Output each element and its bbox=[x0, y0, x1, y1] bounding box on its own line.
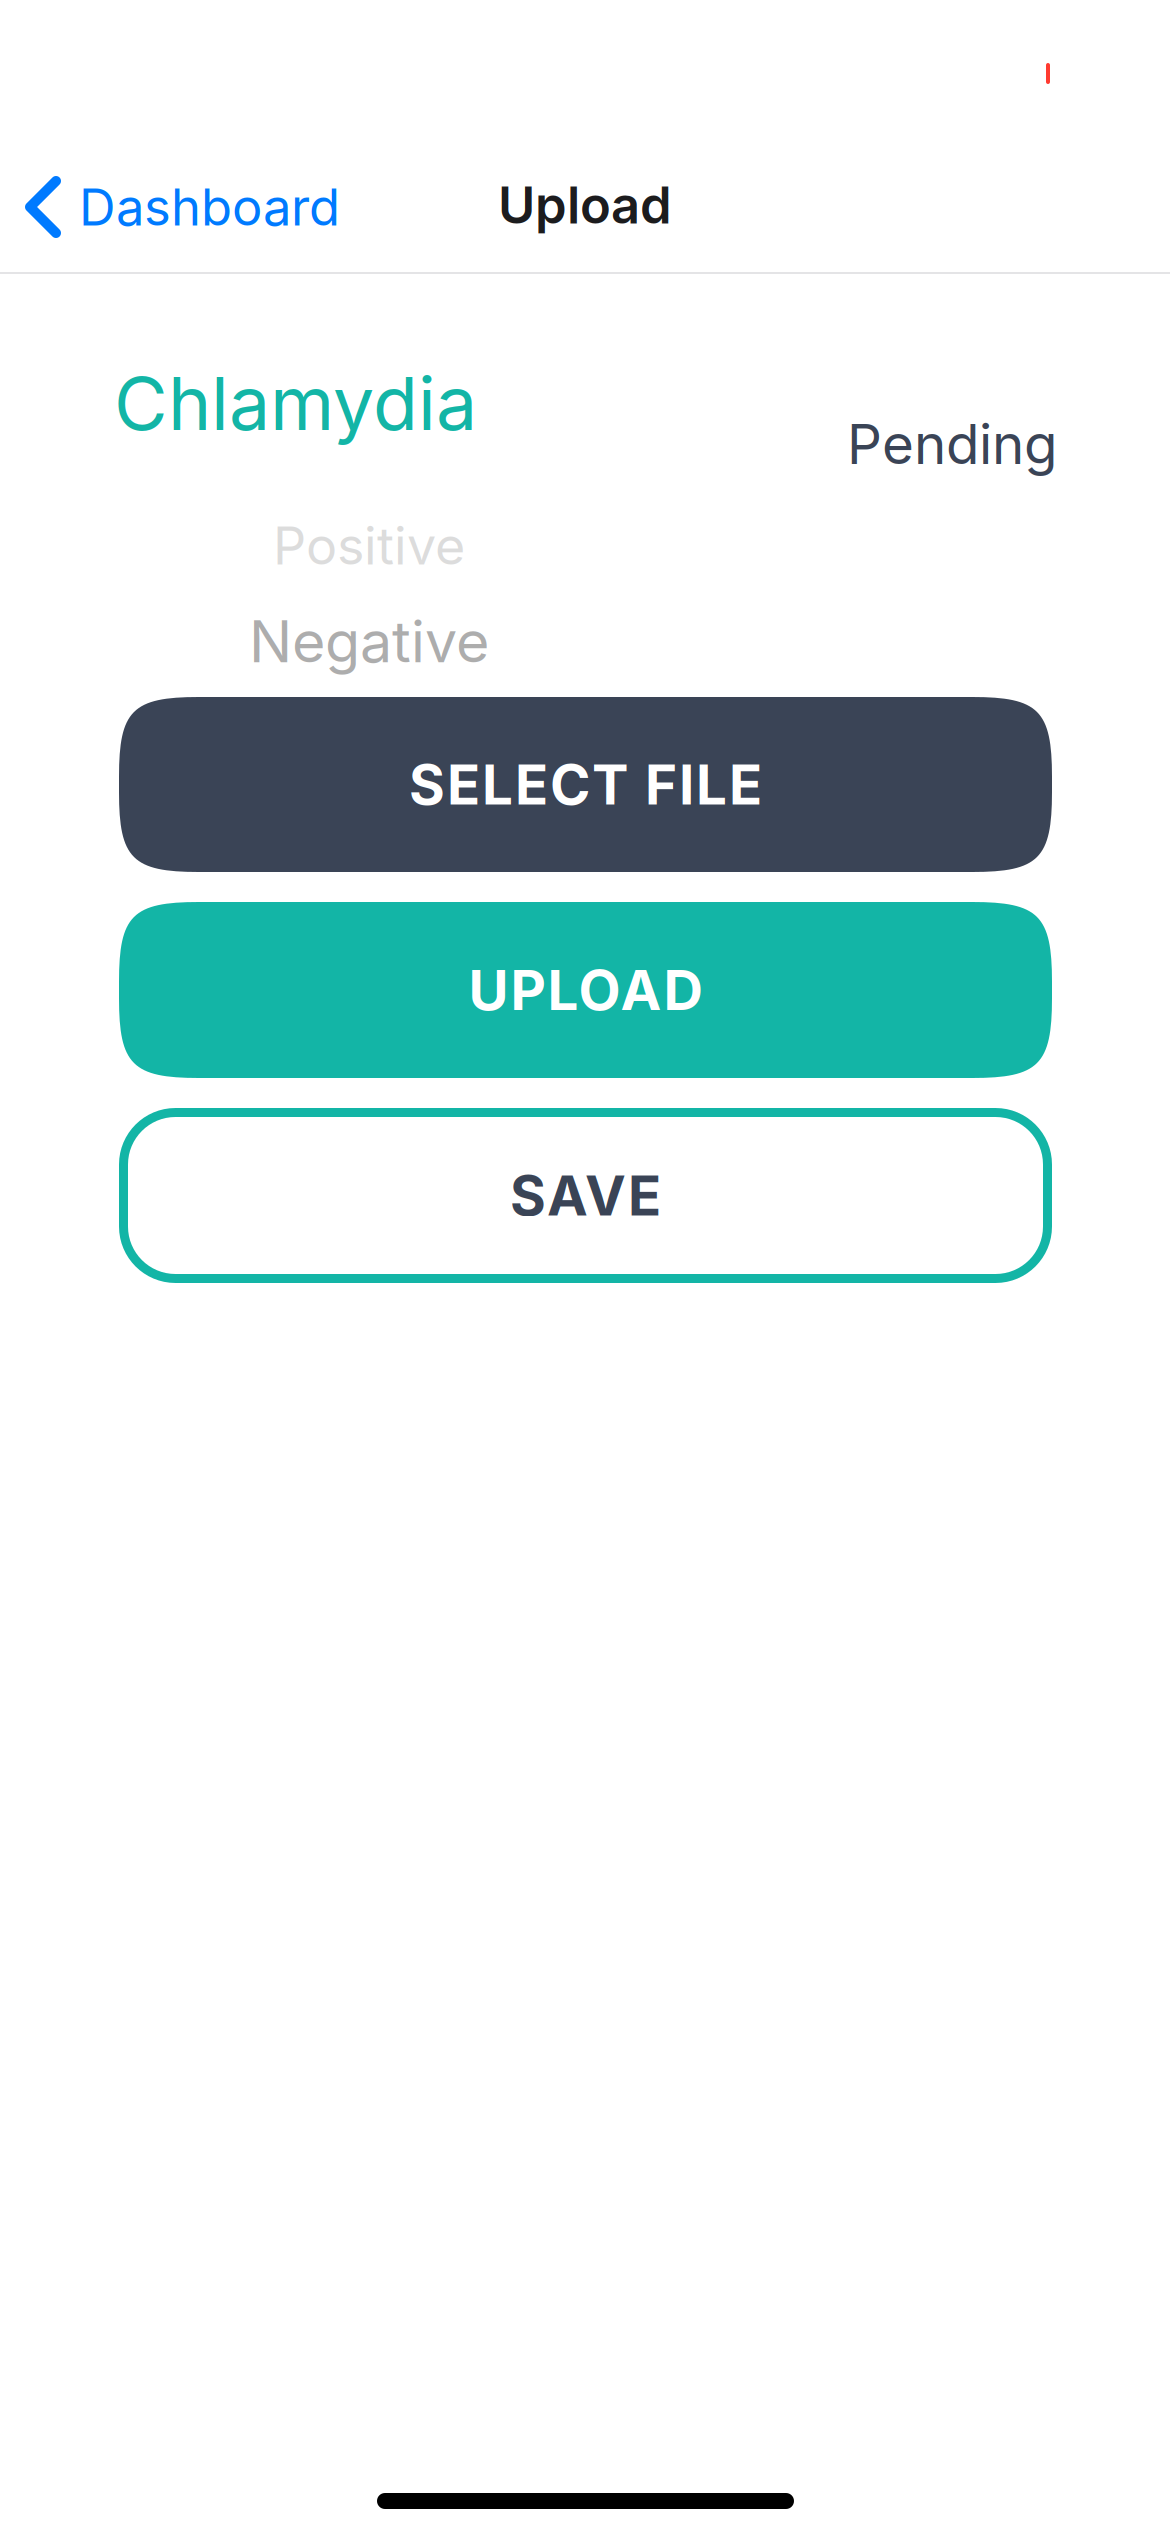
staticText: SELECT FILE bbox=[409, 751, 762, 817]
button[interactable]: Positive bbox=[119, 520, 619, 571]
button[interactable]: SAVE bbox=[119, 1108, 1052, 1283]
staticText: Pending bbox=[847, 411, 1058, 477]
staticText: Upload bbox=[498, 174, 672, 236]
staticText: UPLOAD bbox=[468, 957, 702, 1023]
staticText: Positive bbox=[273, 514, 465, 577]
staticText: Chlamydia bbox=[114, 359, 477, 448]
button[interactable]: UPLOAD bbox=[119, 902, 1052, 1078]
staticText: Dashboard bbox=[79, 176, 340, 238]
staticText: Negative bbox=[249, 607, 489, 676]
button[interactable]: SELECT FILE bbox=[119, 697, 1052, 872]
button[interactable]: Dashboard bbox=[0, 162, 500, 252]
button[interactable]: Negative bbox=[119, 614, 619, 669]
staticText: SAVE bbox=[510, 1162, 661, 1228]
